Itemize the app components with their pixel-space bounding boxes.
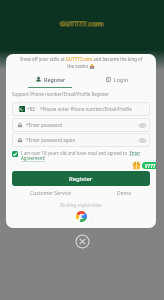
staticText: Binding registration (6, 202, 156, 208)
staticText: ₹777 (145, 163, 156, 169)
staticText: *Enter password (26, 122, 139, 128)
button[interactable]: Demo (117, 190, 132, 197)
staticText: Register (44, 76, 66, 83)
button[interactable]: +92 (12, 102, 150, 116)
button[interactable]: *Enter password (12, 118, 150, 132)
staticText: GUTT77.com (61, 19, 105, 29)
button[interactable]: I am over 18 years old and have read and… (12, 150, 146, 162)
staticText: GUTT77.com (61, 20, 105, 30)
staticText: I am over 18 years old and have read and… (21, 150, 146, 162)
staticText: GUTT77.com (60, 19, 104, 29)
staticText: Support Phone number/Email/Profile Regis… (12, 91, 109, 97)
staticText: GUTT77.com (59, 20, 103, 30)
button[interactable]: Customer Service (30, 190, 72, 197)
button[interactable]: Close (75, 234, 90, 249)
button[interactable]: *Enter password again (12, 133, 150, 147)
button[interactable]: Register (28, 76, 72, 94)
staticText: GUTT77.com (59, 19, 103, 29)
staticText: GUTT77.com (60, 19, 104, 29)
button[interactable]: Login (95, 76, 139, 94)
staticText: Login (114, 76, 129, 83)
staticText: GUTT77.com (60, 20, 104, 30)
button[interactable]: Sign in with Google (73, 208, 89, 224)
staticText: *Please enter Phone number/Email/Profile (40, 106, 132, 112)
staticText: Show off your skills at GUTT77.com and b… (17, 56, 145, 70)
staticText: GUTT77.com (61, 19, 105, 29)
staticText: GUTT77.com (59, 20, 103, 30)
staticText: Register (69, 175, 93, 183)
staticText: GUTT77.com (61, 19, 105, 29)
staticText: *Enter password again (26, 137, 139, 143)
button[interactable]: Register (12, 171, 150, 186)
staticText: GUTT77.com (59, 19, 103, 29)
staticText: GUTT77.com (59, 19, 103, 29)
staticText: +92 (27, 106, 35, 112)
staticText: GUTT77.com (61, 19, 105, 29)
staticText: GUTT77.com (61, 20, 105, 30)
staticText: GUTT77.com (59, 19, 103, 29)
